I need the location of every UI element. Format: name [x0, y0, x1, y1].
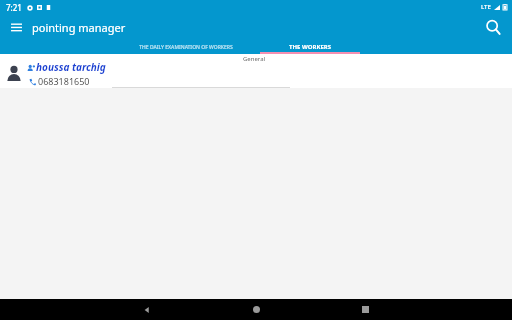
- button[interactable]: Home: [243, 299, 269, 320]
- staticText: pointing manager: [32, 20, 126, 35]
- staticText: houssa tarchig: [36, 60, 106, 74]
- button[interactable]: Back: [134, 299, 160, 320]
- button[interactable]: THE DAILY EXAMINATION OF WORKERS: [112, 40, 260, 54]
- button[interactable]: Search: [482, 16, 504, 38]
- staticText: General: [243, 55, 266, 63]
- button[interactable]: Recent apps: [352, 299, 378, 320]
- staticText: THE WORKERS: [289, 43, 331, 51]
- button[interactable]: Open navigation drawer: [6, 17, 26, 37]
- staticText: THE DAILY EXAMINATION OF WORKERS: [139, 44, 233, 51]
- staticText: LTE: [481, 3, 491, 11]
- button[interactable]: houssa tarchig: [0, 60, 512, 86]
- staticText: 7:21: [6, 2, 22, 13]
- button[interactable]: THE WORKERS: [260, 40, 360, 54]
- staticText: 0683181650: [38, 75, 90, 86]
